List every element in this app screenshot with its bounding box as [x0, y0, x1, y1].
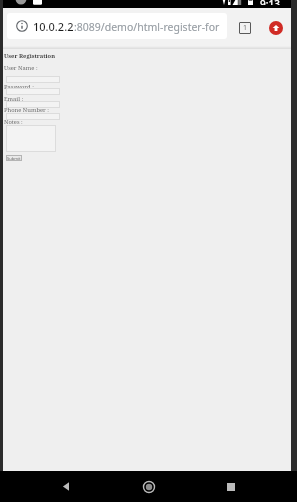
staticText: :8089/demo/html-register-for — [74, 20, 220, 34]
button[interactable]: Submit — [6, 155, 22, 161]
staticText: User Name : — [4, 64, 38, 72]
staticText: 10.0.2.2 — [33, 19, 74, 34]
button[interactable]: Recent apps — [214, 471, 248, 502]
button[interactable]: Home — [132, 471, 166, 502]
button[interactable]: Back — [49, 471, 83, 502]
staticText: 1 — [243, 23, 248, 33]
staticText: Notes : — [4, 118, 23, 126]
button[interactable]: More options — [269, 21, 283, 35]
staticText: Password : — [4, 83, 34, 91]
staticText: User Registration — [4, 52, 56, 60]
staticText: 9:13 — [260, 0, 280, 5]
button[interactable]: Tabs — [239, 22, 251, 34]
staticText: Submit — [7, 156, 21, 161]
button[interactable]: 10.0.2.2 — [7, 13, 227, 39]
staticText: Email : — [4, 95, 24, 103]
staticText: Phone Number : — [4, 106, 50, 114]
